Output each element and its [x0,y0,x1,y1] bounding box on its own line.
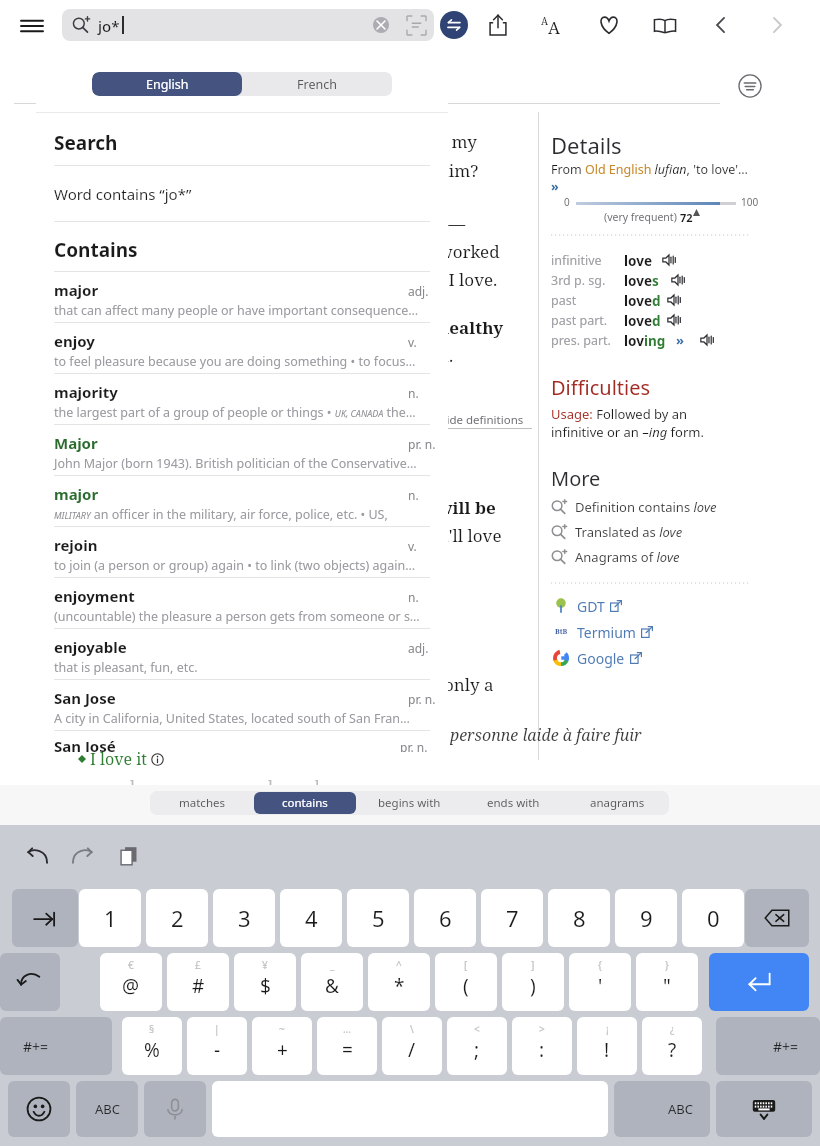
button[interactable]: Translated as love [551,522,683,542]
button[interactable]: major [36,476,448,527]
button[interactable]: 7 [481,889,543,947]
button[interactable]: anagrams [566,792,668,814]
staticText: A [548,16,560,39]
button[interactable]: 6 [414,889,476,947]
button[interactable]: majority [36,374,448,425]
staticText: ? [668,1037,677,1063]
button[interactable]: _ [301,953,363,1011]
button[interactable]: 1 [79,889,141,947]
button[interactable]: ¿ [642,1017,702,1075]
staticText: ABC [95,1100,120,1118]
button[interactable]: Major [36,425,448,476]
button[interactable]: Pronounce loved [667,293,681,307]
button[interactable]: Dictate [144,1081,206,1137]
button[interactable]: ~ [252,1017,312,1075]
button[interactable]: GDT [551,595,622,617]
button[interactable]: Hide keyboard [716,1081,812,1137]
button[interactable]: Shift [0,953,60,1011]
button[interactable]: Menu [14,8,50,44]
staticText: & [325,973,339,999]
button[interactable]: > [512,1017,572,1075]
button[interactable]: major [36,272,448,323]
button[interactable]: € [100,953,162,1011]
staticText: v. [408,334,417,350]
button[interactable]: ] [502,953,564,1011]
button[interactable]: Emoji [8,1081,70,1137]
button[interactable]: Undo [20,839,54,873]
button[interactable]: £ [167,953,229,1011]
button[interactable]: ends with [462,792,564,814]
staticText: BtB [555,627,568,637]
button[interactable]: Google [551,647,642,669]
button[interactable]: #+= [0,1017,112,1075]
button[interactable]: 0 [682,889,744,947]
button[interactable]: San José [36,731,448,752]
button[interactable]: < [447,1017,507,1075]
button[interactable]: English [92,72,242,96]
button[interactable]: Anagrams of love [551,547,680,567]
button[interactable]: 5 [347,889,409,947]
button[interactable]: 8 [548,889,610,947]
button[interactable]: 4 [280,889,342,947]
button[interactable]: jo* [62,9,434,41]
staticText: ; [474,1037,480,1063]
button[interactable]: Pronounce loving [700,333,714,347]
button[interactable]: { [569,953,631,1011]
button[interactable]: Library [647,7,683,43]
button[interactable]: ^ [368,953,430,1011]
button[interactable]: Tab [12,889,78,947]
button[interactable]: Backspace [745,889,809,947]
button[interactable]: Text size [535,7,571,43]
button[interactable]: matches [151,792,252,814]
staticText: Usage: Followed by an infinitive or an –… [551,405,731,441]
button[interactable]: Display options [736,72,764,100]
button[interactable]: Forward [759,7,795,43]
button[interactable]: enjoyable [36,629,448,680]
button[interactable]: Share [480,7,516,43]
button[interactable]: 9 [615,889,677,947]
button[interactable]: begins with [358,792,460,814]
button[interactable]: Hide definitions [436,412,522,428]
button[interactable]: | [187,1017,247,1075]
button[interactable]: \ [382,1017,442,1075]
button[interactable]: Definition contains love [551,497,717,517]
button[interactable]: enjoy [36,323,448,374]
button[interactable]: Paste [112,839,146,873]
button[interactable]: #+= [716,1017,820,1075]
button[interactable]: § [122,1017,182,1075]
staticText: ' [598,973,603,999]
staticText: § [149,1022,155,1036]
button[interactable]: 2 [146,889,208,947]
staticText: that can affect many people or have impo… [54,302,419,319]
button[interactable]: ABC [614,1081,710,1137]
button[interactable]: rejoin [36,527,448,578]
button[interactable]: ¡ [577,1017,637,1075]
button[interactable]: Redo [66,839,100,873]
button[interactable]: Pronounce love [662,253,676,267]
button[interactable]: Favourite [591,7,627,43]
button[interactable]: [ [435,953,497,1011]
button[interactable]: Back [703,7,739,43]
staticText: @ [122,973,140,999]
staticText: majority [54,382,118,402]
button[interactable]: Pronounce loves [671,273,685,287]
button[interactable]: Swap languages [440,11,468,39]
button[interactable]: BtB [551,621,653,643]
button[interactable]: } [636,953,698,1011]
button[interactable]: Return [709,953,809,1011]
button[interactable]: enjoyment [36,578,448,629]
button[interactable]: French [242,72,392,96]
button[interactable]: 3 [213,889,275,947]
button[interactable]: San Jose [36,680,448,731]
button[interactable]: … [317,1017,377,1075]
button[interactable]: Clear [373,17,389,33]
staticText: that is pleasant, fun, etc. [54,659,198,676]
button[interactable]: contains [254,792,356,814]
button[interactable]: Word contains “jo*” [36,166,448,221]
button[interactable]: ¥ [234,953,296,1011]
staticText: to feel pleasure because you are doing s… [54,353,416,370]
button[interactable]: ABC [76,1081,138,1137]
button[interactable]: Pronounce loved [667,313,681,327]
button[interactable]: Scan text [407,16,426,35]
